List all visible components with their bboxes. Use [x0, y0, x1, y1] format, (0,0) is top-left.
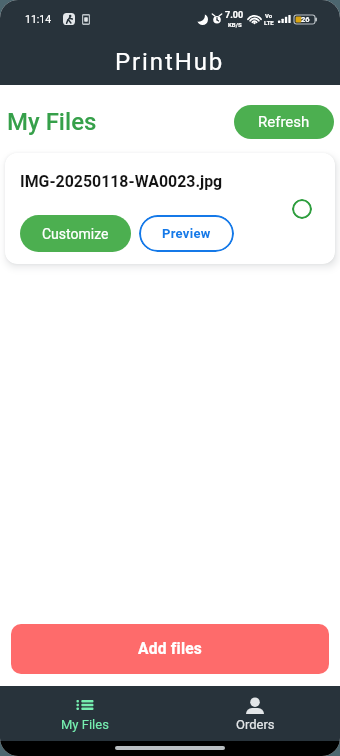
staticText: KB/S — [228, 21, 242, 28]
staticText: Refresh — [258, 113, 310, 131]
button[interactable]: Preview — [139, 215, 234, 252]
button[interactable]: Customize — [20, 215, 131, 252]
staticText: 11:14 — [25, 13, 52, 25]
staticText: Preview — [162, 226, 211, 241]
staticText: IMG-20250118-WA0023.jpg — [20, 172, 223, 191]
button[interactable]: Orders — [170, 686, 340, 741]
staticText: Add files — [138, 640, 203, 658]
staticText: LTE — [264, 19, 274, 26]
staticText: Orders — [236, 717, 275, 732]
staticText: My Files — [61, 717, 109, 732]
staticText: 26 — [301, 15, 310, 24]
staticText: Vo — [265, 12, 273, 19]
staticText: PrintHub — [115, 48, 225, 76]
staticText: My Files — [7, 108, 97, 136]
button[interactable]: My Files — [0, 686, 170, 741]
staticText: Customize — [42, 226, 109, 242]
button[interactable]: Select file — [292, 199, 312, 219]
staticText: 7.00 — [225, 10, 244, 21]
button[interactable]: Refresh — [234, 105, 334, 139]
button[interactable]: Add files — [11, 624, 329, 674]
